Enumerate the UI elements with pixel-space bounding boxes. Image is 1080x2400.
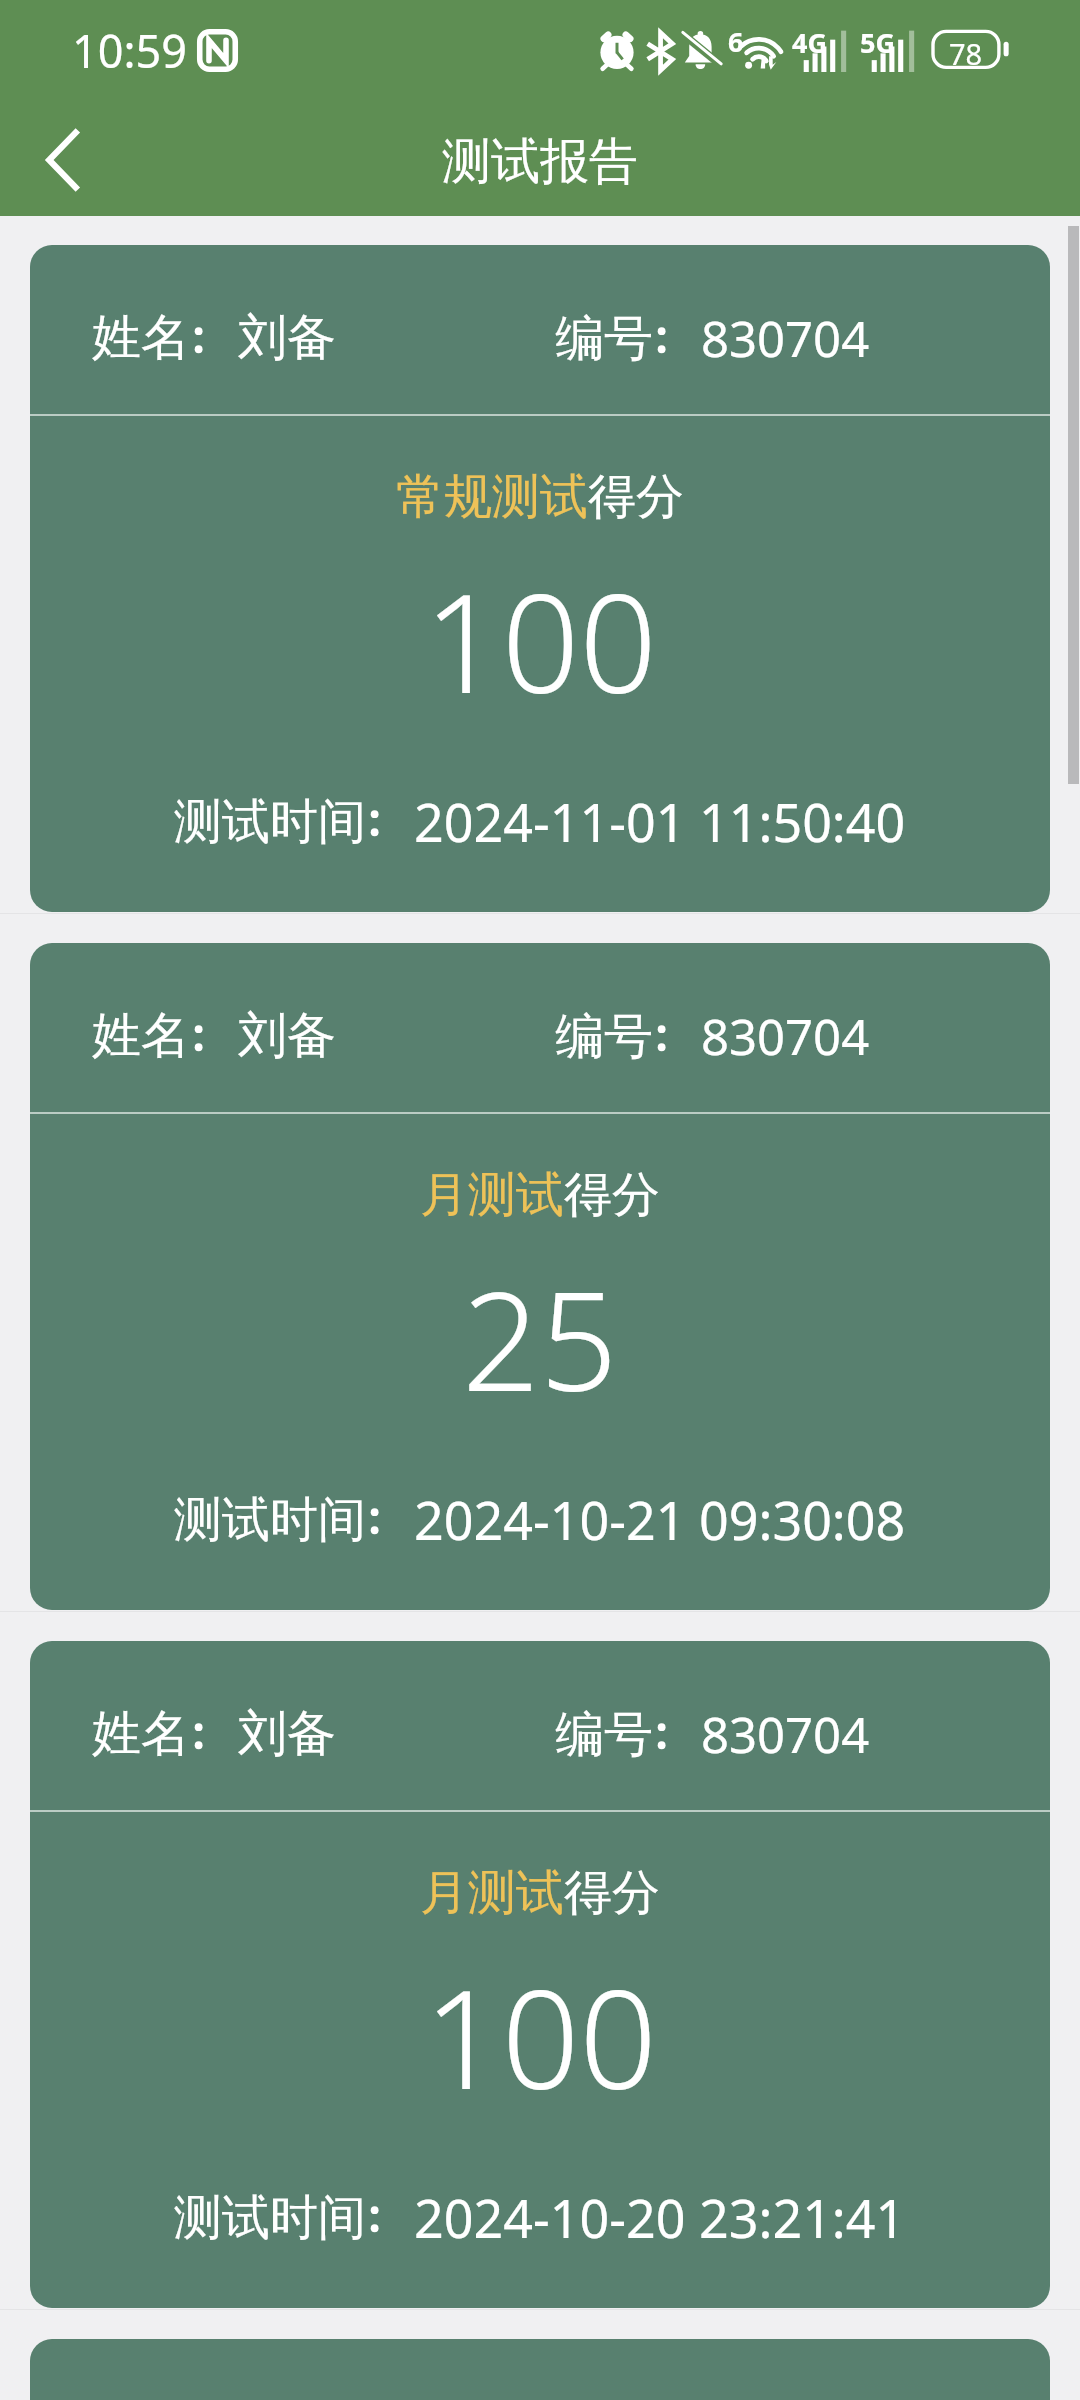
staticText: 编号 [555,308,653,370]
staticText: 830704 [701,305,870,372]
button[interactable]: 姓名 [30,245,1050,912]
staticText: 78 [949,34,983,73]
staticText: 测试报告 [442,131,638,193]
staticText: 姓名 [92,307,190,369]
staticText: 10:59 [72,20,188,81]
button[interactable]: 姓名 [30,1641,1050,2308]
staticText: 得分 [564,1863,660,1923]
staticText: 月测试 [420,1863,564,1923]
staticText: 编号 [555,1006,653,1068]
staticText: 4G [792,24,827,61]
staticText: 测试时间 [174,2188,366,2248]
staticText: 830704 [701,1003,870,1070]
staticText: 姓名 [92,1005,190,1067]
staticText: 2024-10-21 09:30:08 [414,1484,906,1555]
staticText: 100 [424,1944,657,2129]
button[interactable]: 姓名 [30,2339,1050,2400]
staticText: 刘备 [238,1703,336,1765]
staticText: 常规测试 [396,467,588,527]
staticText: 6 [728,23,744,60]
staticText: 得分 [564,1165,660,1225]
staticText: 测试时间 [174,1490,366,1550]
staticText: 姓名 [92,1703,190,1765]
staticText: 得分 [588,467,684,527]
staticText: 刘备 [238,1005,336,1067]
staticText: 测试时间 [174,792,366,852]
staticText: 月测试 [420,1165,564,1225]
staticText: 刘备 [238,307,336,369]
staticText: 830704 [701,1701,870,1768]
staticText: 100 [424,548,657,733]
staticText: 2024-11-01 11:50:40 [414,786,906,857]
staticText: 2024-10-20 23:21:41 [414,2182,906,2253]
staticText: 5G [860,24,895,61]
button[interactable]: 姓名 [30,943,1050,1610]
button[interactable]: Back [19,116,107,204]
staticText: 编号 [555,1704,653,1766]
staticText: 25 [462,1246,618,1431]
